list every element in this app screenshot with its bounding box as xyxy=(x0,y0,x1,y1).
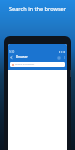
button[interactable]: search in browser xyxy=(10,62,65,67)
staticText: 9:30 xyxy=(9,50,15,54)
staticText: Search in the browser xyxy=(0,5,75,13)
button[interactable]: Tabs xyxy=(56,55,62,61)
staticText: Browser xyxy=(16,55,28,59)
staticText: search in browser xyxy=(15,63,35,66)
button[interactable]: Back xyxy=(8,54,15,61)
button[interactable]: More options xyxy=(62,55,67,60)
